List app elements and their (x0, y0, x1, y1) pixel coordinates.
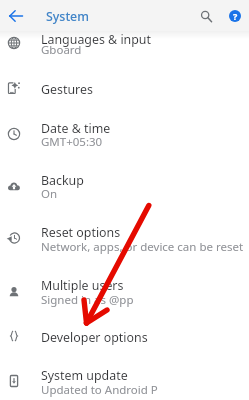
staticText: Signed in as @pp (41, 292, 134, 308)
staticText: On (41, 186, 58, 202)
staticText: Reset options (41, 224, 121, 241)
staticText: ? (233, 10, 238, 22)
staticText: Updated to Android P (41, 382, 158, 398)
staticText: GMT+05:30 (41, 134, 103, 150)
staticText: System update (41, 367, 128, 384)
button[interactable]: Languages & input (0, 23, 249, 64)
button[interactable]: Developer options (0, 321, 249, 349)
button[interactable]: Backup (0, 164, 249, 209)
staticText: Languages & input (41, 31, 151, 48)
button[interactable]: Reset options (0, 216, 249, 262)
button[interactable]: System update (0, 359, 249, 400)
staticText: System (46, 8, 89, 25)
button[interactable]: Help (223, 4, 247, 28)
staticText: Backup (41, 172, 84, 189)
button[interactable]: Date & time (0, 112, 249, 157)
button[interactable]: Search (194, 4, 218, 28)
staticText: Gestures (41, 81, 93, 98)
button[interactable]: Back (4, 4, 28, 28)
staticText: Gboard (41, 42, 82, 58)
button[interactable]: Gestures (0, 73, 249, 101)
staticText: Network, apps, or device can be reset (41, 239, 244, 255)
button[interactable]: Multiple users (0, 269, 249, 315)
staticText: Date & time (41, 120, 111, 137)
staticText: Developer options (41, 329, 148, 346)
staticText: Multiple users (41, 277, 124, 294)
